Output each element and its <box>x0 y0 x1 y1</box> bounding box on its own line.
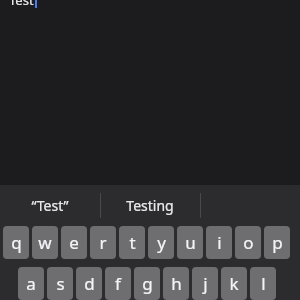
staticText: d <box>84 272 95 295</box>
staticText: q <box>11 231 22 254</box>
button[interactable]: p <box>264 226 290 259</box>
staticText: t <box>129 231 136 254</box>
staticText: l <box>261 272 266 295</box>
staticText: u <box>185 231 196 254</box>
button[interactable]: o <box>235 226 261 259</box>
staticText: r <box>99 231 107 254</box>
button[interactable]: u <box>177 226 203 259</box>
button[interactable]: a <box>18 267 44 300</box>
button[interactable]: i <box>206 226 232 259</box>
staticText: j <box>203 272 208 295</box>
button[interactable]: t <box>119 226 145 259</box>
button[interactable]: e <box>61 226 87 259</box>
staticText: w <box>38 231 52 254</box>
button[interactable]: f <box>105 267 131 300</box>
staticText: f <box>115 272 121 295</box>
button[interactable]: r <box>90 226 116 259</box>
button[interactable]: q <box>3 226 29 259</box>
staticText: h <box>171 272 182 295</box>
staticText: g <box>142 272 153 295</box>
staticText: Test <box>9 0 34 9</box>
staticText: “Test” <box>31 196 69 215</box>
button[interactable]: k <box>221 267 247 300</box>
staticText: o <box>243 231 254 254</box>
button[interactable]: j <box>192 267 218 300</box>
button[interactable]: “Test” <box>0 185 100 226</box>
staticText: i <box>217 231 222 254</box>
button[interactable]: y <box>148 226 174 259</box>
staticText: e <box>69 231 79 254</box>
button[interactable]: g <box>134 267 160 300</box>
staticText: s <box>56 272 65 295</box>
staticText: y <box>157 231 166 254</box>
staticText: a <box>26 272 36 295</box>
button[interactable]: Testing <box>100 185 200 226</box>
button[interactable]: w <box>32 226 58 259</box>
staticText: k <box>229 272 239 295</box>
staticText: p <box>272 231 283 254</box>
button[interactable]: h <box>163 267 189 300</box>
button[interactable]: Test <box>9 0 37 9</box>
button[interactable]: s <box>47 267 73 300</box>
button[interactable]: d <box>76 267 102 300</box>
staticText: Testing <box>126 196 174 215</box>
button[interactable]: l <box>250 267 276 300</box>
